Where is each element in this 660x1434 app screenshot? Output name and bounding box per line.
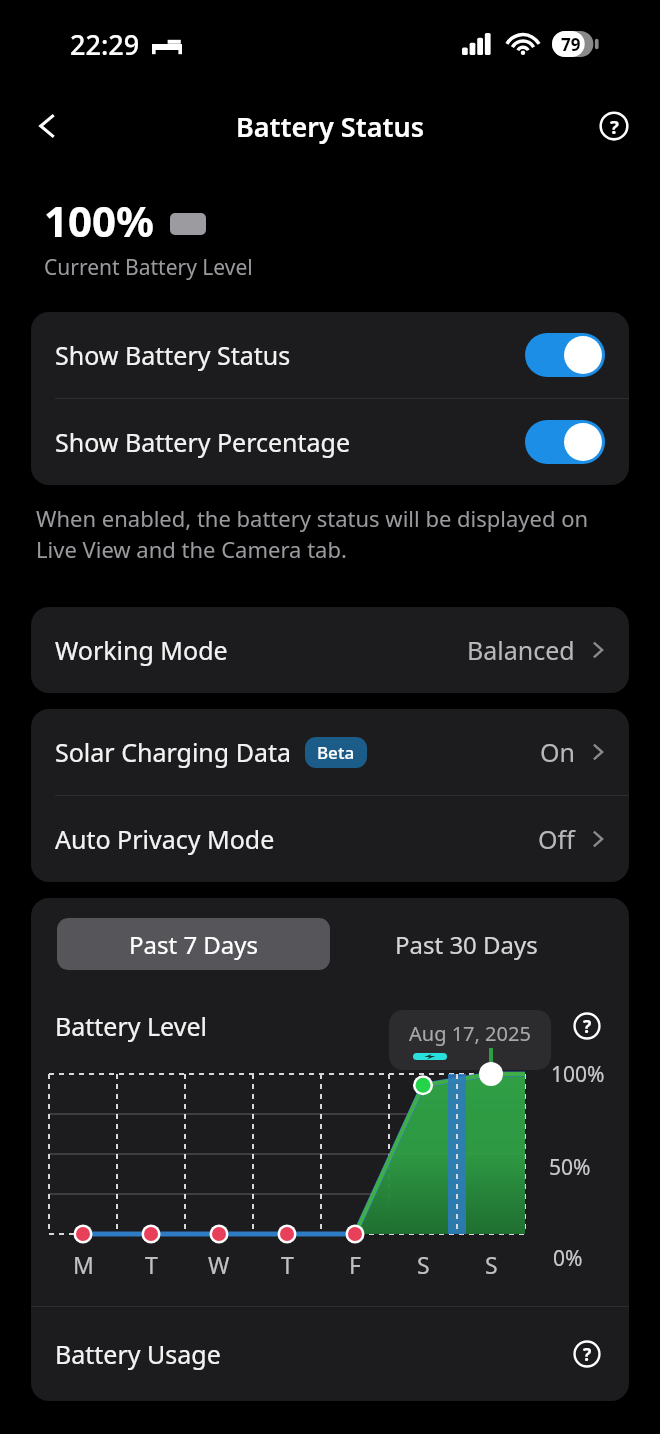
button[interactable]: Show Battery Percentage — [31, 399, 629, 485]
button[interactable]: Working Mode — [31, 607, 629, 693]
staticText: 50% — [549, 1153, 591, 1182]
staticText: Past 7 Days — [129, 928, 259, 961]
button[interactable]: Battery Usage — [31, 1307, 629, 1401]
staticText: When enabled, the battery status will be… — [36, 503, 624, 565]
button[interactable]: Battery usage help — [567, 1334, 607, 1374]
button[interactable]: Past 7 Days — [57, 918, 330, 970]
button[interactable]: Show Battery Status — [31, 312, 629, 398]
staticText: 0% — [553, 1244, 583, 1273]
button[interactable]: Battery level help — [567, 1006, 607, 1046]
staticText: Solar Charging Data — [55, 735, 291, 769]
staticText: 100 — [459, 1053, 511, 1060]
staticText: On — [540, 735, 575, 769]
staticText: W — [208, 1249, 230, 1280]
staticText: Beta — [317, 741, 355, 764]
staticText: 100% — [44, 192, 154, 249]
staticText: ? — [610, 114, 619, 139]
staticText: Balanced — [467, 633, 575, 667]
staticText: M — [73, 1249, 94, 1280]
button[interactable]: Back — [22, 100, 74, 152]
staticText: ? — [583, 1014, 592, 1038]
staticText: Aug 17, 2025 — [409, 1020, 531, 1047]
staticText: 100% — [551, 1060, 605, 1089]
button[interactable]: Solar Charging Data — [31, 709, 629, 795]
staticText: T — [145, 1249, 158, 1280]
staticText: Auto Privacy Mode — [55, 822, 275, 856]
button[interactable]: Help — [588, 100, 640, 152]
staticText: Battery Status — [236, 108, 424, 145]
staticText: ? — [583, 1342, 592, 1366]
staticText: Off — [538, 822, 575, 856]
staticText: S — [485, 1249, 498, 1280]
staticText: Show Battery Status — [55, 338, 525, 372]
button[interactable]: Auto Privacy Mode — [31, 796, 629, 882]
staticText: 79 — [561, 33, 581, 56]
staticText: Show Battery Percentage — [55, 425, 525, 459]
staticText: Current Battery Level — [44, 253, 253, 282]
staticText: Battery Usage — [55, 1337, 567, 1371]
staticText: Past 30 Days — [395, 928, 538, 961]
staticText: T — [281, 1249, 294, 1280]
button[interactable]: Past 30 Days — [330, 918, 603, 970]
staticText: 22:29 — [70, 26, 140, 63]
staticText: S — [417, 1249, 430, 1280]
staticText: Working Mode — [55, 633, 228, 667]
staticText: Battery Level — [55, 1009, 207, 1043]
staticText: F — [349, 1249, 361, 1280]
